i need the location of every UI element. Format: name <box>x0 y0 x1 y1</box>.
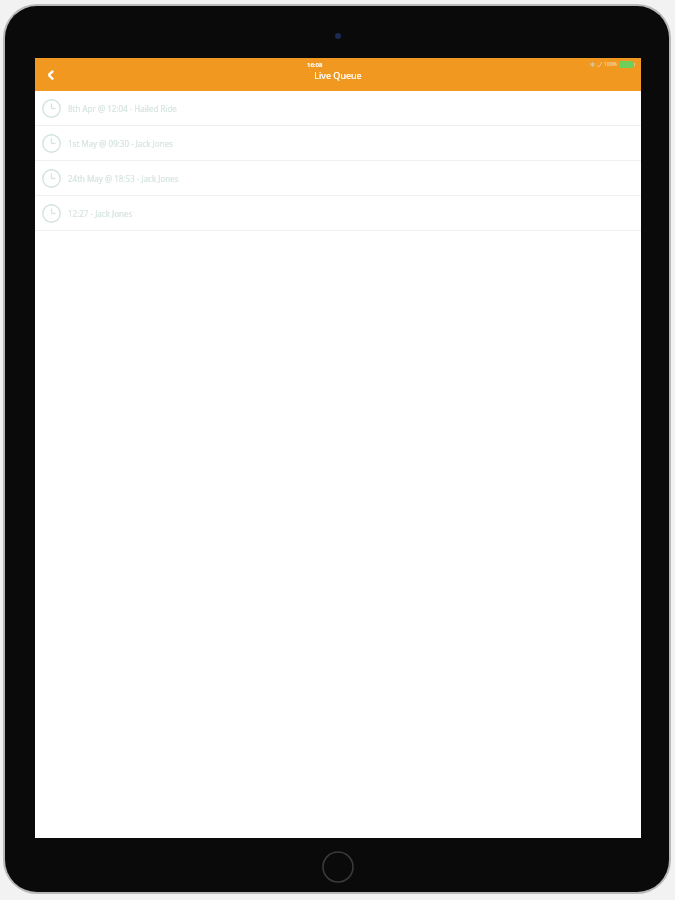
button[interactable]: 12:27 - Jack Jones <box>35 196 641 230</box>
staticText: 16:08 <box>307 61 323 69</box>
button[interactable]: 24th May @ 18:53 - Jack Jones <box>35 161 641 195</box>
staticText: 24th May @ 18:53 - Jack Jones <box>68 173 179 184</box>
button[interactable]: Back <box>40 64 62 86</box>
staticText: Live Queue <box>314 69 362 81</box>
staticText: 1st May @ 09:30 - Jack Jones <box>68 138 173 149</box>
staticText: 8th Apr @ 12:04 - Hailed Ride <box>68 103 177 114</box>
button[interactable]: 8th Apr @ 12:04 - Hailed Ride <box>35 91 641 125</box>
staticText: 12:27 - Jack Jones <box>68 208 133 219</box>
staticText: 100% <box>604 61 617 68</box>
button[interactable]: 1st May @ 09:30 - Jack Jones <box>35 126 641 160</box>
